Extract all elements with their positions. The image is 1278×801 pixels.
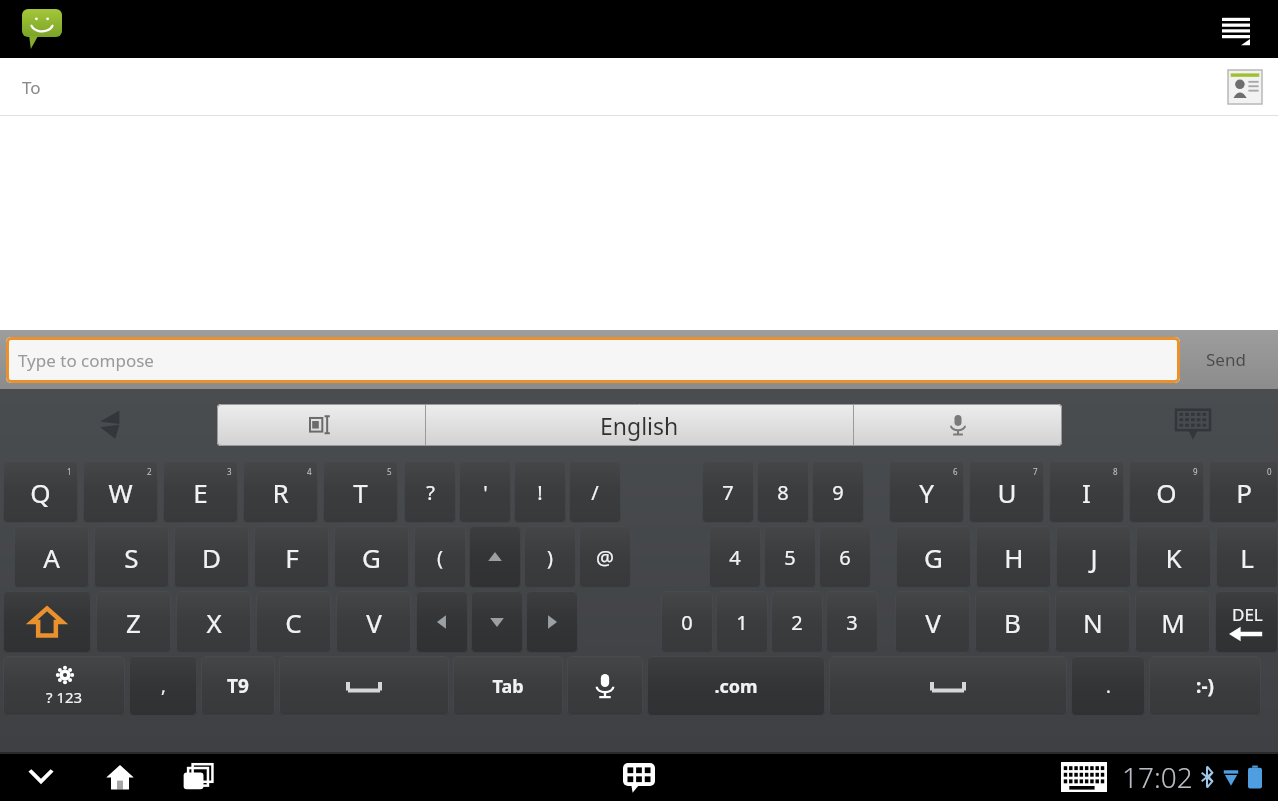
button[interactable]: V (895, 591, 970, 653)
button[interactable]: Tab (453, 656, 563, 716)
button[interactable]: P (1209, 461, 1278, 523)
button[interactable]: W (83, 461, 158, 523)
button[interactable]: E (163, 461, 238, 523)
button[interactable]: D (174, 526, 249, 588)
staticText: 4 (729, 544, 741, 571)
button[interactable]: / (569, 461, 621, 523)
button[interactable]: T (323, 461, 398, 523)
button[interactable]: Space (829, 656, 1067, 716)
button[interactable]: Hide keyboard (1170, 401, 1216, 447)
button[interactable]: T9 (201, 656, 275, 716)
button[interactable]: English (426, 404, 853, 446)
button[interactable]: Right (526, 591, 578, 653)
button[interactable]: Q (3, 461, 78, 523)
staticText: N (1083, 605, 1103, 640)
button[interactable]: Delete (1215, 591, 1278, 653)
staticText: U (997, 475, 1017, 510)
button[interactable]: Left (416, 591, 468, 653)
button[interactable]: Up (469, 526, 521, 588)
staticText: 1 (67, 466, 72, 477)
staticText: DEL (1232, 603, 1263, 626)
button[interactable]: 4 (709, 526, 761, 588)
staticText: M (1161, 605, 1185, 640)
button[interactable]: S (94, 526, 169, 588)
button[interactable]: 9 (812, 461, 864, 523)
button[interactable]: Shift (3, 591, 91, 653)
button[interactable]: A (14, 526, 89, 588)
button[interactable]: , (129, 656, 197, 716)
staticText: 8 (1113, 466, 1118, 477)
button[interactable]: Recent apps (176, 754, 222, 800)
button[interactable]: Voice input (854, 404, 1062, 446)
staticText: To (22, 76, 41, 99)
button[interactable]: Down (471, 591, 523, 653)
button[interactable]: ' (459, 461, 511, 523)
button[interactable]: K (1136, 526, 1211, 588)
staticText: I (1082, 475, 1091, 510)
button[interactable]: J (1056, 526, 1131, 588)
button[interactable]: Y (889, 461, 964, 523)
staticText: B (1004, 605, 1021, 640)
button[interactable]: R (243, 461, 318, 523)
staticText: , (161, 674, 166, 699)
button[interactable]: 7 (702, 461, 754, 523)
button[interactable]: 2 (771, 591, 823, 653)
button[interactable]: 8 (757, 461, 809, 523)
button[interactable]: O (1129, 461, 1204, 523)
button[interactable]: More options (1214, 7, 1258, 51)
button[interactable]: M (1135, 591, 1210, 653)
button[interactable]: V (336, 591, 411, 653)
button[interactable]: Messaging (20, 7, 64, 51)
button[interactable]: .com (647, 656, 825, 716)
staticText: 0 (1267, 466, 1272, 477)
staticText: O (1156, 475, 1177, 510)
button[interactable]: Space (279, 656, 449, 716)
staticText: A (43, 540, 60, 575)
staticText: G (924, 540, 943, 575)
button[interactable]: 0 (661, 591, 713, 653)
button[interactable]: . (1071, 656, 1145, 716)
button[interactable]: G (334, 526, 409, 588)
button[interactable]: 6 (819, 526, 871, 588)
button[interactable]: @ (579, 526, 631, 588)
button[interactable]: :-) (1149, 656, 1261, 716)
button[interactable]: X (176, 591, 251, 653)
button[interactable]: U (969, 461, 1044, 523)
button[interactable]: H (976, 526, 1051, 588)
button[interactable]: N (1055, 591, 1130, 653)
button[interactable]: I (1049, 461, 1124, 523)
button[interactable]: 3 (826, 591, 878, 653)
button[interactable]: C (256, 591, 331, 653)
staticText: / (591, 479, 599, 506)
staticText: @ (596, 544, 614, 571)
button[interactable]: Keyboard (1058, 759, 1110, 795)
button[interactable]: Z (96, 591, 171, 653)
staticText: V (366, 605, 382, 640)
button[interactable]: Back (18, 754, 64, 800)
button[interactable]: ( (414, 526, 466, 588)
button[interactable]: Send (1180, 334, 1272, 385)
button[interactable]: F (254, 526, 329, 588)
button[interactable]: Apps (616, 754, 662, 800)
button[interactable]: 1 (716, 591, 768, 653)
button[interactable]: G (896, 526, 971, 588)
button[interactable]: ? (404, 461, 456, 523)
button[interactable]: 5 (764, 526, 816, 588)
staticText: . (1106, 674, 1111, 699)
staticText: W (108, 475, 133, 510)
staticText: 2 (147, 466, 152, 477)
button[interactable]: Symbols and settings (3, 656, 125, 716)
button[interactable]: Handwriting (82, 401, 128, 447)
staticText: Y (919, 475, 934, 510)
button[interactable]: Add recipient from contacts (1226, 68, 1264, 106)
staticText: 9 (1193, 466, 1198, 477)
button[interactable]: Home (97, 754, 143, 800)
button[interactable]: ) (524, 526, 576, 588)
button[interactable]: ! (514, 461, 566, 523)
button[interactable]: Keyboard layout (217, 404, 425, 446)
button[interactable]: B (975, 591, 1050, 653)
button[interactable]: Voice input (567, 656, 643, 716)
button[interactable]: L (1216, 526, 1278, 588)
staticText: 7 (1033, 466, 1038, 477)
button[interactable]: Type to compose (6, 337, 1180, 383)
